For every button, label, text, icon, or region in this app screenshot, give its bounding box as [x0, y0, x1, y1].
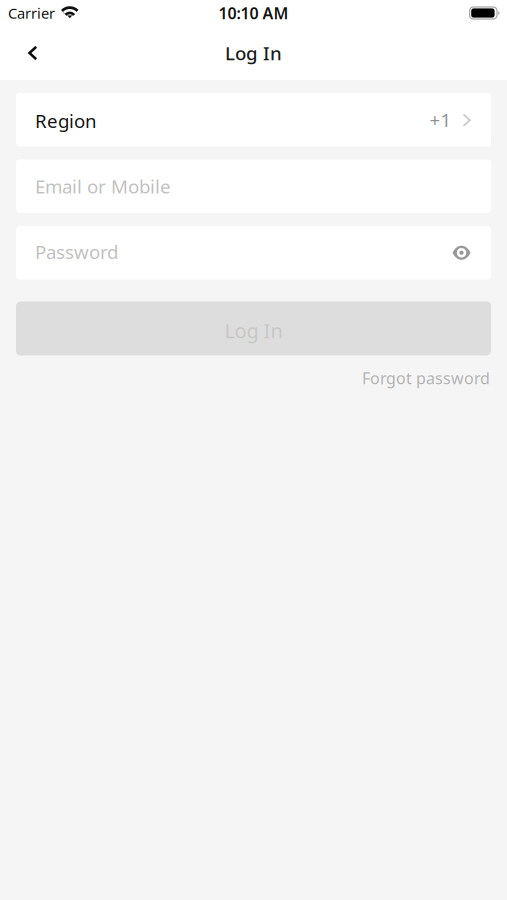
- staticText: Password: [35, 239, 118, 264]
- staticText: 10:10 AM: [218, 2, 288, 24]
- staticText: Carrier: [8, 3, 55, 23]
- button[interactable]: Back: [11, 31, 55, 75]
- staticText: Region: [35, 108, 97, 133]
- button[interactable]: Show password: [442, 226, 480, 279]
- staticText: Email or Mobile: [35, 174, 171, 199]
- staticText: +1: [429, 107, 451, 132]
- staticText: Log In: [225, 41, 282, 65]
- staticText: Forgot password: [362, 367, 490, 389]
- button[interactable]: Region: [16, 93, 491, 146]
- staticText: Log In: [224, 317, 282, 344]
- button[interactable]: Forgot password: [362, 367, 490, 389]
- button[interactable]: Email or Mobile: [16, 159, 491, 213]
